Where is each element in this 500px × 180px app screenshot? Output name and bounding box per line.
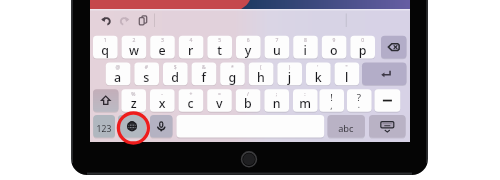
- button[interactable]: [0, 0, 500, 180]
